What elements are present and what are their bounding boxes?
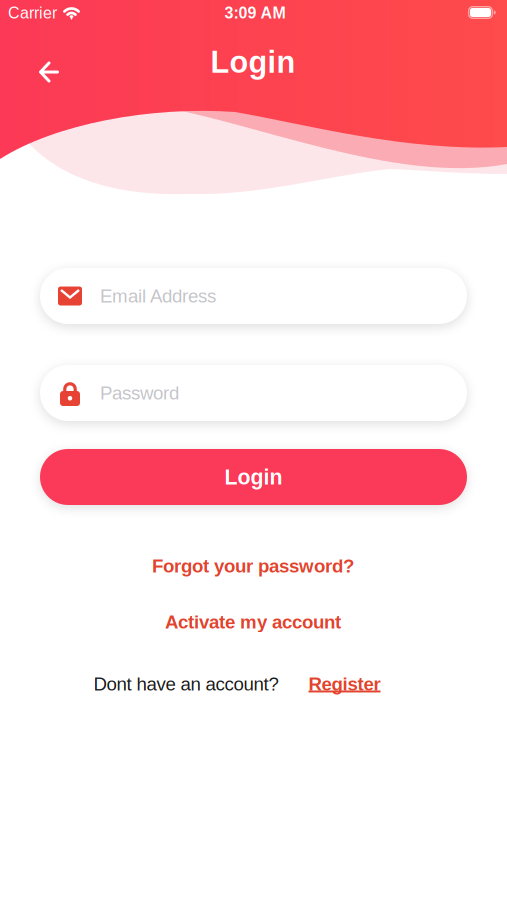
staticText: Password: [100, 383, 179, 403]
button[interactable]: Back: [29, 52, 69, 92]
staticText: Login: [210, 45, 295, 79]
button[interactable]: Email Address: [40, 268, 467, 324]
staticText: Login: [224, 465, 282, 489]
staticText: 3:09 AM: [224, 4, 285, 22]
staticText: Email Address: [100, 286, 216, 306]
staticText: Carrier: [8, 4, 57, 22]
staticText: Forgot your password?: [152, 556, 354, 576]
button[interactable]: Forgot your password?: [152, 556, 354, 576]
button[interactable]: Activate my account: [165, 612, 341, 632]
staticText: Activate my account: [165, 612, 341, 632]
button[interactable]: Login: [40, 449, 467, 505]
button[interactable]: Password: [40, 365, 467, 421]
staticText: Register: [308, 674, 380, 694]
staticText: Dont have an account?: [93, 674, 278, 694]
button[interactable]: Register: [308, 674, 380, 694]
